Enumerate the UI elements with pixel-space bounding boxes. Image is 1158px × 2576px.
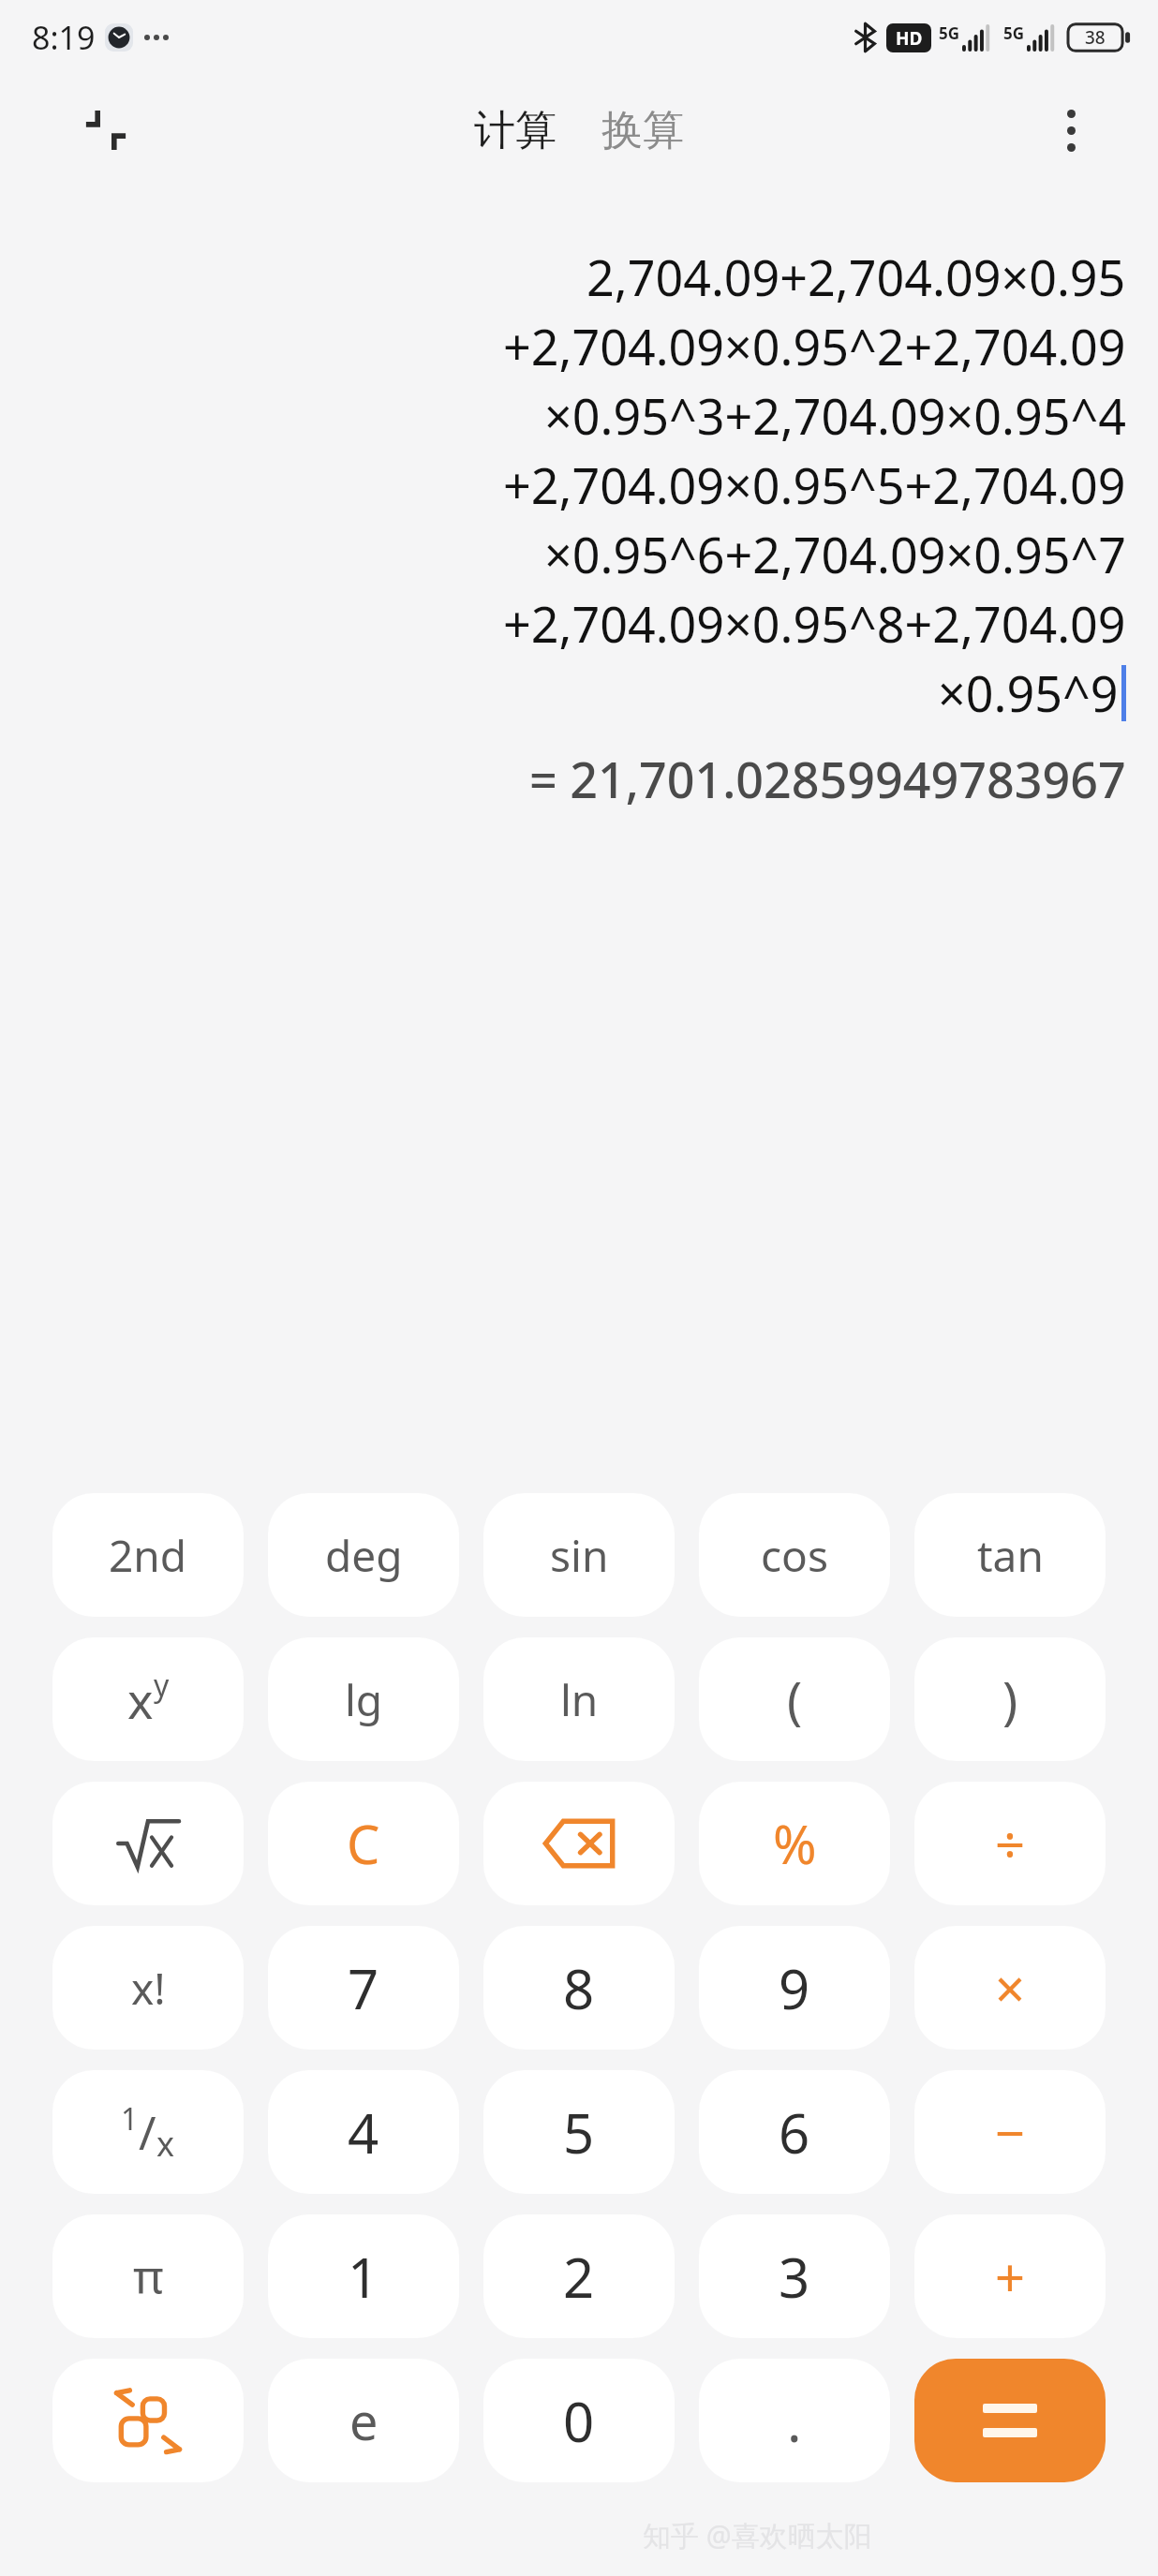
button[interactable]: Square root xyxy=(52,1782,244,1905)
staticText: +2,704.09×0.95^2+2,704.09 xyxy=(503,313,1126,379)
button[interactable]: 0 xyxy=(483,2359,675,2482)
staticText: 5G xyxy=(1003,22,1025,44)
staticText: 38 xyxy=(1085,25,1106,50)
staticText: 6 xyxy=(779,2095,810,2169)
staticText: e xyxy=(349,2386,379,2455)
staticText: 1 xyxy=(121,2098,139,2139)
staticText: tan xyxy=(977,1526,1044,1585)
staticText: sin xyxy=(550,1526,609,1585)
button[interactable]: π xyxy=(52,2214,244,2338)
button[interactable]: 9 xyxy=(699,1926,890,2050)
button[interactable]: Random xyxy=(52,2359,244,2482)
staticText: ) xyxy=(1002,1665,1018,1734)
staticText: 0 xyxy=(563,2384,595,2458)
staticText: + xyxy=(995,2241,1026,2312)
button[interactable]: 2nd xyxy=(52,1493,244,1617)
staticText: x xyxy=(156,2121,175,2167)
staticText: y xyxy=(154,1665,170,1706)
button[interactable]: e xyxy=(268,2359,459,2482)
staticText: × xyxy=(995,1952,1026,2023)
staticText: 5 xyxy=(563,2095,595,2169)
staticText: ×0.95^3+2,704.09×0.95^4 xyxy=(544,382,1126,449)
button[interactable]: lg xyxy=(268,1637,459,1761)
button[interactable]: + xyxy=(914,2214,1106,2338)
button[interactable] xyxy=(914,2359,1106,2482)
staticText: ÷ xyxy=(995,1808,1026,1879)
staticText: 换算 xyxy=(601,105,684,156)
staticText: x xyxy=(127,1666,154,1733)
staticText: 计算 xyxy=(474,105,557,156)
staticText: ×0.95^9 xyxy=(938,659,1119,726)
staticText: 5G xyxy=(939,22,960,44)
button[interactable]: 3 xyxy=(699,2214,890,2338)
staticText: 2nd xyxy=(109,1526,187,1585)
staticText: lg xyxy=(345,1670,383,1729)
button[interactable]: . xyxy=(699,2359,890,2482)
button[interactable]: tan xyxy=(914,1493,1106,1617)
staticText: % xyxy=(773,1808,817,1879)
staticText: HD xyxy=(896,26,923,51)
button[interactable]: × xyxy=(914,1926,1106,2050)
button[interactable]: 计算 xyxy=(465,97,566,164)
button[interactable]: 4 xyxy=(268,2070,459,2194)
button[interactable]: 6 xyxy=(699,2070,890,2194)
staticText: cos xyxy=(761,1526,828,1585)
button[interactable]: Collapse xyxy=(73,97,139,163)
staticText: / xyxy=(139,2100,156,2164)
button[interactable]: Delete xyxy=(483,1782,675,1905)
button[interactable]: x! xyxy=(52,1926,244,2050)
staticText: ln xyxy=(560,1670,599,1729)
staticText: 8:19 xyxy=(32,16,96,59)
button[interactable]: − xyxy=(914,2070,1106,2194)
button[interactable]: C xyxy=(268,1782,459,1905)
staticText: = 21,701.02859949783967 xyxy=(529,746,1126,812)
button[interactable]: sin xyxy=(483,1493,675,1617)
staticText: ×0.95^6+2,704.09×0.95^7 xyxy=(544,521,1126,587)
staticText: 知乎 @喜欢晒太阳 xyxy=(643,2516,872,2554)
button[interactable]: ÷ xyxy=(914,1782,1106,1905)
button[interactable]: 2 xyxy=(483,2214,675,2338)
staticText: π xyxy=(133,2244,164,2308)
button[interactable]: More options xyxy=(1038,97,1104,163)
button[interactable]: 7 xyxy=(268,1926,459,2050)
staticText: . xyxy=(787,2384,802,2458)
staticText: − xyxy=(995,2096,1026,2168)
staticText: C xyxy=(347,1808,380,1879)
button[interactable]: cos xyxy=(699,1493,890,1617)
button[interactable]: 换算 xyxy=(592,97,693,164)
staticText: 3 xyxy=(779,2240,810,2314)
button[interactable]: % xyxy=(699,1782,890,1905)
staticText: 8 xyxy=(563,1951,595,2025)
button[interactable]: deg xyxy=(268,1493,459,1617)
button[interactable]: x xyxy=(52,1637,244,1761)
button[interactable]: ) xyxy=(914,1637,1106,1761)
button[interactable]: ln xyxy=(483,1637,675,1761)
staticText: 9 xyxy=(779,1951,810,2025)
staticText: +2,704.09×0.95^8+2,704.09 xyxy=(503,590,1126,657)
button[interactable]: 5 xyxy=(483,2070,675,2194)
staticText: 1 xyxy=(348,2240,379,2314)
button[interactable]: 8 xyxy=(483,1926,675,2050)
staticText: deg xyxy=(325,1526,403,1585)
staticText: ( xyxy=(787,1665,803,1734)
button[interactable]: 1 xyxy=(52,2070,244,2194)
staticText: x! xyxy=(131,1959,166,2018)
staticText: 2 xyxy=(563,2240,595,2314)
button[interactable]: ( xyxy=(699,1637,890,1761)
staticText: 2,704.09+2,704.09×0.95 xyxy=(586,244,1126,310)
staticText: +2,704.09×0.95^5+2,704.09 xyxy=(503,452,1126,518)
staticText: 4 xyxy=(348,2095,379,2169)
staticText: 7 xyxy=(348,1951,379,2025)
button[interactable]: 1 xyxy=(268,2214,459,2338)
